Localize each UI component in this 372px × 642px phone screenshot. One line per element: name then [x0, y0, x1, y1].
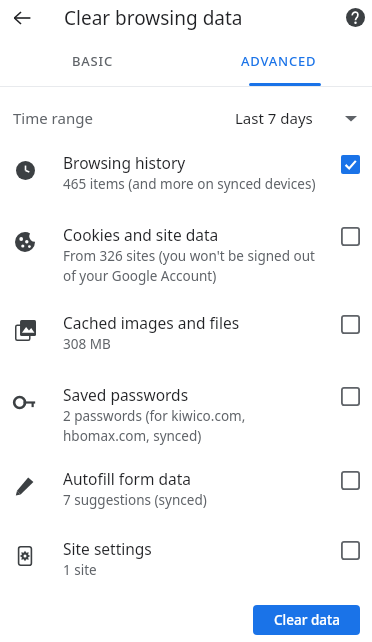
staticText: Clear browsing data	[64, 5, 243, 31]
staticText: Saved passwords	[63, 384, 189, 405]
button[interactable]: Site settings	[0, 532, 372, 598]
staticText: Cookies and site data	[63, 224, 219, 245]
staticText: 465 items (and more on synced devices)	[63, 175, 316, 193]
staticText: From 326 sites (you won't be signed out …	[63, 247, 315, 285]
staticText: Autofill form data	[63, 468, 191, 489]
staticText: 2 passwords (for kiwico.com, hbomax.com,…	[63, 407, 246, 445]
staticText: Cached images and files	[63, 312, 240, 333]
staticText: Last 7 days	[235, 108, 313, 128]
staticText: 1 site	[63, 561, 97, 579]
staticText: 308 MB	[63, 335, 111, 353]
staticText: Clear data	[274, 611, 340, 629]
button[interactable]: Clear data	[253, 605, 360, 635]
staticText: Site settings	[63, 538, 152, 559]
button[interactable]: Browsing history	[0, 146, 372, 218]
button[interactable]: Cached images and files	[0, 306, 372, 378]
button[interactable]: Saved passwords	[0, 378, 372, 462]
staticText: BASIC	[72, 52, 114, 70]
button[interactable]: Cookies and site data	[0, 218, 372, 306]
staticText: Browsing history	[63, 152, 186, 173]
button[interactable]: Help	[339, 1, 371, 33]
staticText: ADVANCED	[241, 52, 317, 70]
staticText: 7 suggestions (synced)	[63, 491, 207, 509]
button[interactable]: BASIC	[0, 36, 186, 86]
staticText: Time range	[13, 108, 93, 128]
button[interactable]: Autofill form data	[0, 462, 372, 532]
button[interactable]: Time range	[0, 89, 372, 146]
button[interactable]: ADVANCED	[186, 36, 372, 86]
button[interactable]: Back	[6, 2, 38, 34]
